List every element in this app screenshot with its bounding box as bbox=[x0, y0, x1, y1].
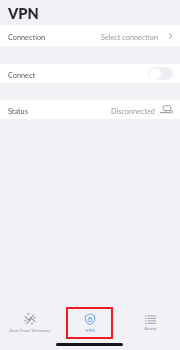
button[interactable]: Connect bbox=[0, 64, 180, 83]
staticText: VPN bbox=[8, 5, 39, 22]
button[interactable]: Zero Trust Telemetry bbox=[0, 311, 60, 341]
staticText: Connection bbox=[8, 33, 46, 42]
button[interactable]: Status bbox=[0, 100, 180, 119]
button[interactable]: Connection bbox=[0, 25, 180, 46]
button[interactable]: VPN bbox=[60, 311, 120, 341]
staticText: Connect bbox=[8, 71, 36, 80]
staticText: VPN bbox=[85, 327, 95, 333]
staticText: About bbox=[144, 325, 157, 331]
other: VPN bbox=[84, 313, 96, 325]
other: Zero Trust Telemetry bbox=[24, 313, 36, 325]
button[interactable]: About bbox=[120, 311, 180, 341]
staticText: Zero Trust Telemetry bbox=[9, 327, 51, 333]
button[interactable]: Connect toggle bbox=[148, 67, 173, 80]
staticText: Select connection bbox=[101, 33, 159, 42]
staticText: Disconnected bbox=[111, 107, 155, 116]
staticText: Status bbox=[8, 107, 28, 116]
other: About bbox=[145, 315, 156, 325]
